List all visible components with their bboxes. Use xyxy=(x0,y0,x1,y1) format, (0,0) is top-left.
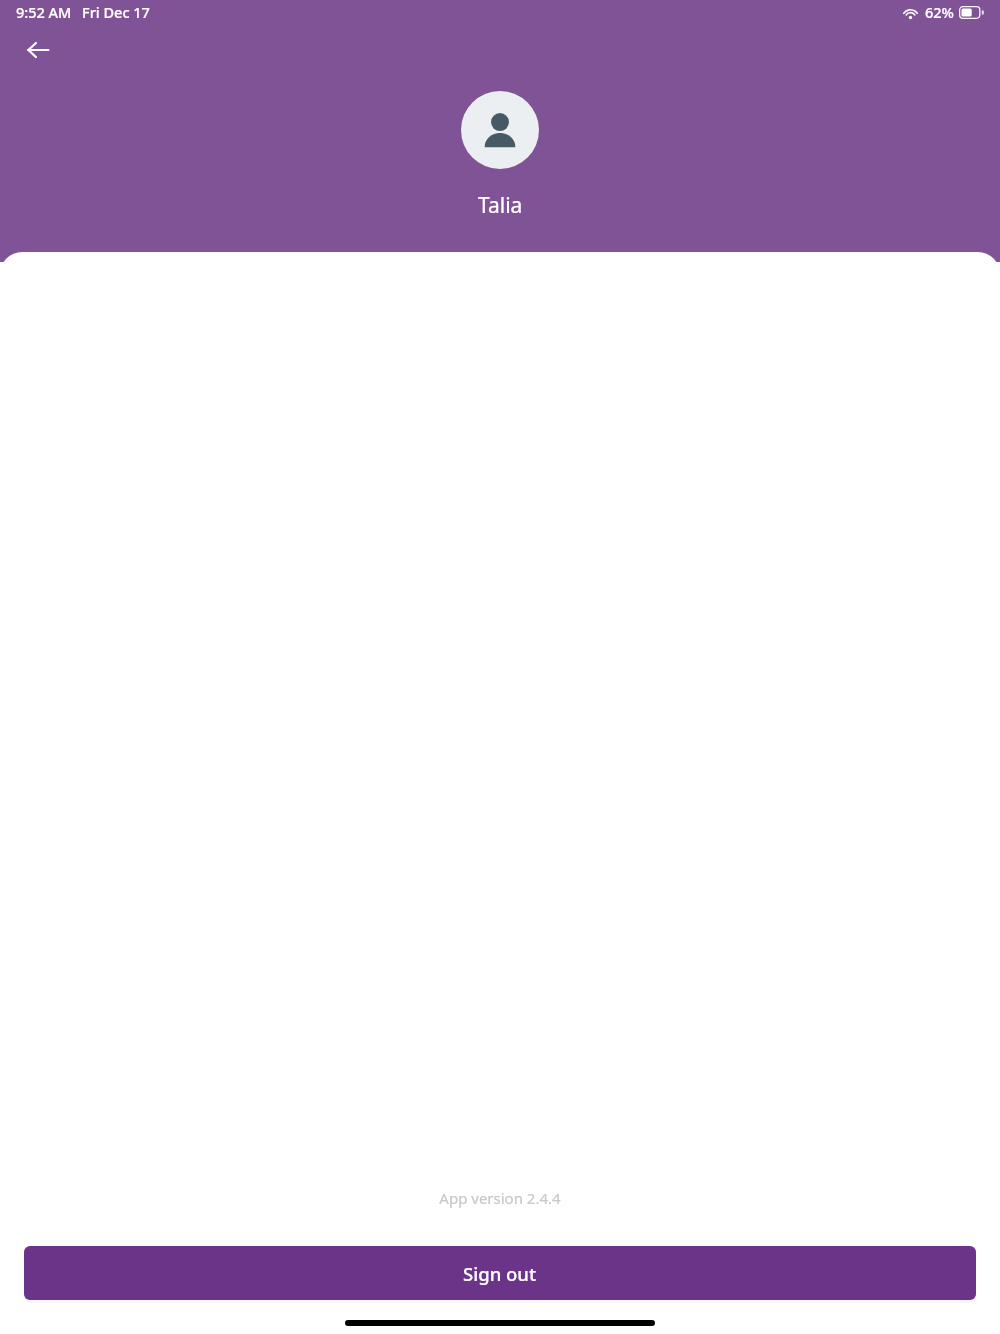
staticText: 62% xyxy=(925,2,954,22)
button[interactable]: Profile photo xyxy=(461,91,539,169)
staticText: App version 2.4.4 xyxy=(439,1188,561,1208)
staticText: 9:52 AM xyxy=(16,2,72,22)
staticText: Talia xyxy=(478,191,523,220)
staticText: Sign out xyxy=(463,1261,537,1286)
button[interactable]: Back xyxy=(14,26,62,74)
staticText: Fri Dec 17 xyxy=(82,2,150,22)
button[interactable]: Sign out xyxy=(24,1246,976,1300)
